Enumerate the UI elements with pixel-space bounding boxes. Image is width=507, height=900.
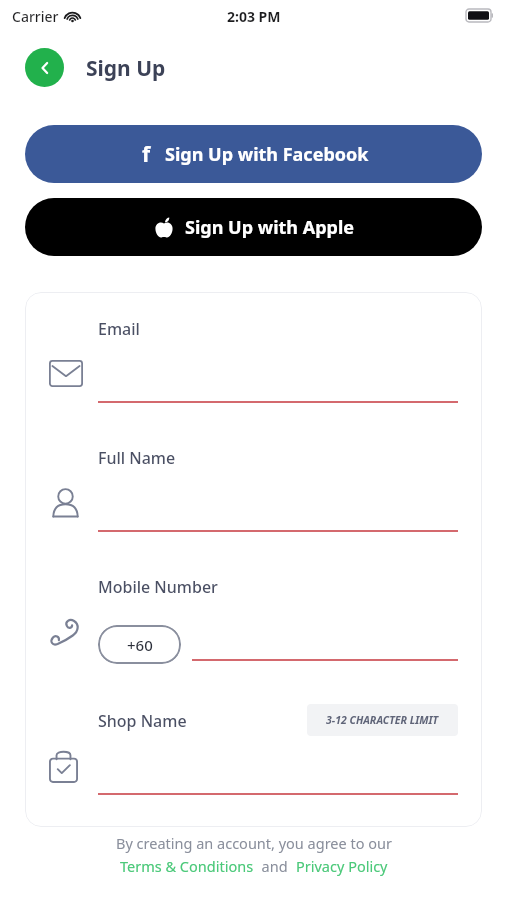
staticText: Sign Up with Facebook [165, 142, 369, 167]
staticText: f [142, 140, 151, 169]
button[interactable]: Back [25, 48, 64, 87]
staticText: Email [98, 318, 140, 340]
staticText: Sign Up with Apple [185, 215, 355, 240]
staticText: Carrier [12, 7, 59, 26]
staticText: 3-12 CHARACTER LIMIT [326, 713, 439, 727]
button[interactable]: Terms & Conditions [120, 856, 254, 876]
staticText: Shop Name [98, 710, 187, 732]
staticText: Full Name [98, 447, 176, 469]
button[interactable]: f [25, 125, 482, 183]
button[interactable]: +60 [98, 625, 181, 664]
staticText: By creating an account, you agree to our [116, 833, 392, 853]
staticText: and [254, 856, 296, 876]
button[interactable]: Privacy Policy [296, 856, 388, 876]
button[interactable]: Sign Up with Apple [25, 198, 482, 256]
staticText: Sign Up [86, 54, 166, 83]
staticText: Privacy Policy [296, 856, 388, 876]
staticText: Terms & Conditions [120, 856, 254, 876]
staticText: 2:03 PM [227, 7, 281, 26]
staticText: +60 [127, 635, 153, 655]
staticText: Mobile Number [98, 576, 218, 598]
